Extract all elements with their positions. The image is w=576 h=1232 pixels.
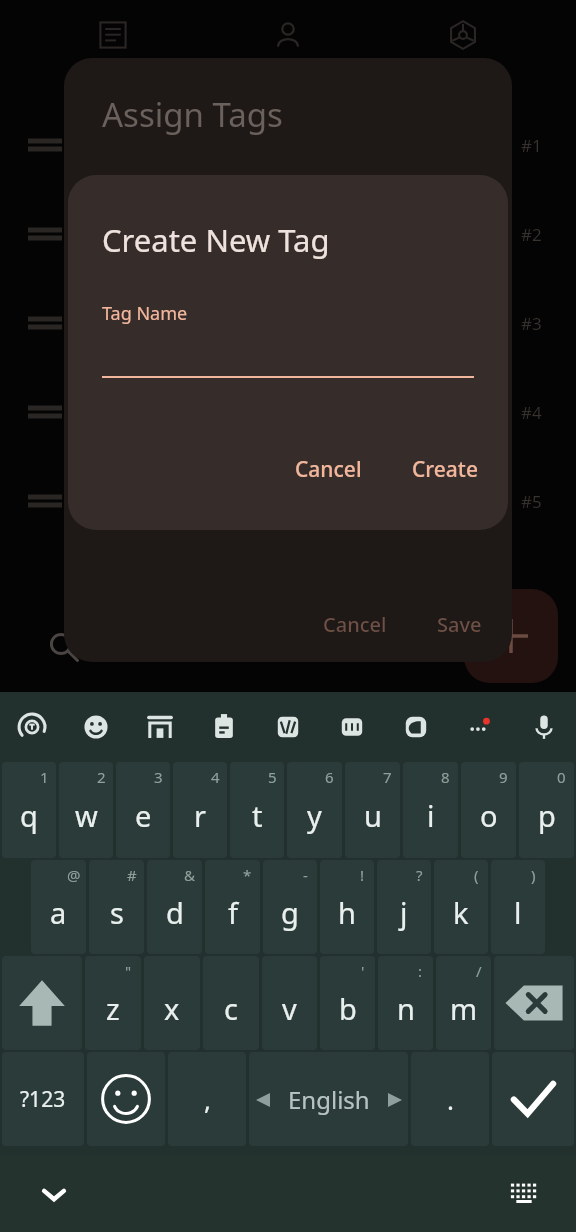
button[interactable]: ) xyxy=(491,860,545,954)
staticText: z xyxy=(106,989,120,1028)
button[interactable]: Add xyxy=(464,589,558,683)
staticText: 0 xyxy=(557,767,566,787)
staticText: #5 xyxy=(521,490,542,513)
button[interactable]: #5 xyxy=(0,475,576,527)
button[interactable]: / xyxy=(436,956,491,1050)
staticText: q xyxy=(20,796,38,835)
staticText: Save xyxy=(437,611,482,638)
staticText: m xyxy=(450,989,478,1028)
button[interactable]: Search xyxy=(42,625,86,669)
staticText: , xyxy=(204,1082,211,1117)
staticText: s xyxy=(110,893,124,932)
button[interactable]: Profile xyxy=(226,0,350,70)
staticText: b xyxy=(339,989,357,1028)
button[interactable]: Text tools xyxy=(256,692,320,762)
staticText: w xyxy=(75,796,98,835)
staticText: ( xyxy=(474,865,479,885)
button[interactable]: ! xyxy=(320,860,374,954)
button[interactable]: #2 xyxy=(0,208,576,260)
button[interactable]: 1 xyxy=(2,762,56,858)
staticText: k xyxy=(453,893,469,932)
staticText: #3 xyxy=(521,312,542,335)
button[interactable]: #3 xyxy=(0,297,576,349)
button[interactable]: 6 xyxy=(287,762,342,858)
button[interactable]: 7 xyxy=(345,762,400,858)
staticText: p xyxy=(538,796,556,835)
button[interactable]: 3 xyxy=(116,762,170,858)
staticText: #1 xyxy=(521,134,542,157)
button[interactable]: ( xyxy=(434,860,488,954)
button[interactable]: English xyxy=(249,1052,408,1146)
staticText: o xyxy=(480,796,498,835)
button[interactable]: Assistant xyxy=(384,692,448,762)
staticText: # xyxy=(127,865,137,885)
button[interactable]: Enter xyxy=(492,1052,574,1146)
staticText: & xyxy=(184,865,195,885)
staticText: #4 xyxy=(521,401,542,424)
button[interactable]: Notes xyxy=(0,0,226,70)
button[interactable]: More options xyxy=(448,692,512,762)
button[interactable]: & xyxy=(147,860,202,954)
staticText: ?123 xyxy=(20,1085,66,1114)
button[interactable]: ?123 xyxy=(2,1052,84,1146)
button[interactable]: 4 xyxy=(173,762,227,858)
button[interactable]: Packages xyxy=(350,0,576,70)
button[interactable]: Hide keyboard xyxy=(28,1168,80,1220)
button[interactable]: Voice input xyxy=(512,692,576,762)
staticText: r xyxy=(194,796,206,835)
staticText: a xyxy=(50,893,67,932)
button[interactable]: Emoji xyxy=(87,1052,165,1146)
staticText: v xyxy=(282,989,297,1028)
button[interactable]: @ xyxy=(31,860,86,954)
button[interactable]: c xyxy=(203,956,259,1050)
button[interactable]: Emoji xyxy=(64,692,128,762)
staticText: ' xyxy=(361,961,365,981)
staticText: " xyxy=(125,961,132,981)
staticText: Cancel xyxy=(295,455,362,484)
staticText: Tag Name xyxy=(102,301,188,326)
staticText: 6 xyxy=(325,767,334,787)
button[interactable]: Translate xyxy=(0,692,64,762)
staticText: - xyxy=(303,865,308,885)
button[interactable]: , xyxy=(168,1052,246,1146)
button[interactable]: ? xyxy=(377,860,431,954)
staticText: 9 xyxy=(499,767,508,787)
button[interactable]: #1 xyxy=(0,119,576,171)
button[interactable]: Shift xyxy=(2,956,82,1050)
button[interactable]: 9 xyxy=(461,762,516,858)
button[interactable]: - xyxy=(263,860,317,954)
button[interactable]: . xyxy=(411,1052,489,1146)
button[interactable]: Store xyxy=(128,692,192,762)
button[interactable]: Switch keyboard xyxy=(498,1168,550,1220)
button[interactable]: Save xyxy=(421,603,498,646)
button[interactable]: " xyxy=(85,956,141,1050)
button[interactable]: Cancel xyxy=(279,447,378,492)
button[interactable]: 0 xyxy=(519,762,574,858)
button[interactable]: 8 xyxy=(403,762,458,858)
button[interactable]: #4 xyxy=(0,386,576,438)
button[interactable]: x xyxy=(144,956,200,1050)
staticText: e xyxy=(135,796,152,835)
button[interactable]: 2 xyxy=(59,762,113,858)
button[interactable]: Numbers xyxy=(320,692,384,762)
staticText: English xyxy=(288,1083,370,1116)
staticText: 8 xyxy=(441,767,450,787)
staticText: f xyxy=(228,893,238,932)
button[interactable]: Cancel xyxy=(307,603,403,646)
staticText: 2 xyxy=(97,767,106,787)
staticText: ? xyxy=(416,865,423,885)
button[interactable]: ' xyxy=(320,956,375,1050)
button[interactable]: v xyxy=(262,956,317,1050)
button[interactable]: Backspace xyxy=(494,956,574,1050)
staticText: u xyxy=(364,796,382,835)
staticText: Assign Tags xyxy=(102,92,283,137)
button[interactable]: * xyxy=(205,860,260,954)
staticText: 3 xyxy=(154,767,163,787)
button[interactable]: Clipboard xyxy=(192,692,256,762)
button[interactable]: : xyxy=(378,956,433,1050)
staticText: g xyxy=(281,893,299,932)
button[interactable]: # xyxy=(89,860,144,954)
button[interactable]: 5 xyxy=(230,762,284,858)
staticText: . xyxy=(447,1082,454,1117)
button[interactable]: Create xyxy=(396,447,494,492)
